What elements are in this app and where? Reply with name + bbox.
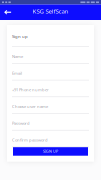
staticText: Confirm password bbox=[12, 137, 48, 143]
staticText: SIGN UP bbox=[43, 149, 58, 154]
staticText: KSG SelfScan bbox=[32, 7, 68, 15]
staticText: Email bbox=[12, 70, 22, 76]
staticText: +91 Phone number bbox=[12, 87, 49, 92]
staticText: Sign up bbox=[12, 33, 28, 39]
staticText: Name bbox=[12, 54, 23, 59]
button[interactable]: SIGN UP bbox=[13, 147, 88, 156]
button[interactable]: Back bbox=[0, 4, 15, 20]
staticText: Password bbox=[12, 120, 30, 126]
staticText: Choose user name bbox=[12, 104, 48, 109]
